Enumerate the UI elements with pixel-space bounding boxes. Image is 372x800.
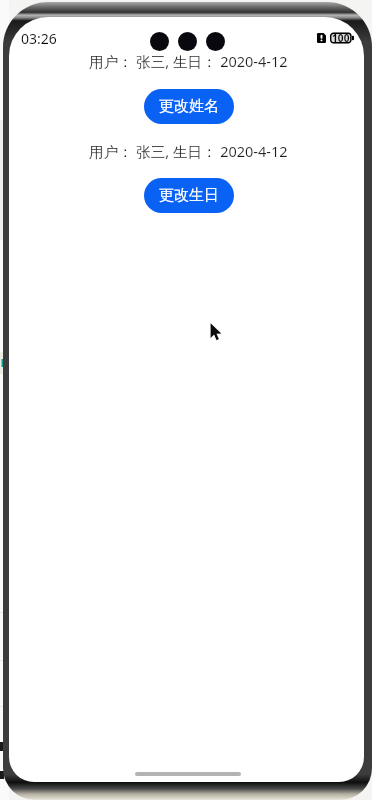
staticText: 100 xyxy=(332,31,350,45)
staticText: 更改姓名 xyxy=(159,97,219,116)
other: Battery 100 percent xyxy=(330,30,354,46)
button[interactable]: 更改姓名 xyxy=(144,89,234,124)
other: Notification alert xyxy=(317,33,326,43)
staticText: 更改生日 xyxy=(159,186,219,205)
button[interactable]: 更改生日 xyxy=(144,178,234,213)
staticText: 用户： 张三, 生日： 2020-4-12 xyxy=(89,51,288,71)
staticText: 03:26 xyxy=(21,29,57,48)
staticText: 用户： 张三, 生日： 2020-4-12 xyxy=(89,141,288,161)
